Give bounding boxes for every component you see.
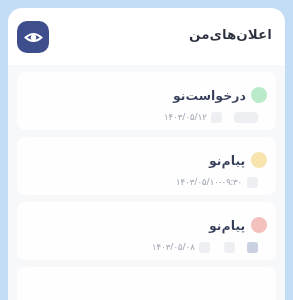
staticText: پیام‌نو [209, 153, 246, 168]
button[interactable]: پیام‌نو [17, 202, 276, 260]
button[interactable]: درخواست‌نو [17, 72, 276, 130]
staticText: اعلان‌های‌من [189, 26, 272, 42]
staticText: ۱۴۰۳/۰۵/۱۰-۰۹:۳۰ [176, 176, 243, 188]
staticText: پیام‌نو [209, 218, 246, 233]
button[interactable]: پیام‌نو [17, 137, 276, 195]
staticText: ۱۴۰۳/۰۵/۱۲ [164, 111, 207, 123]
button[interactable]: Preview [17, 21, 49, 53]
staticText: ۱۴۰۳/۰۵/۰۸ [152, 241, 195, 253]
staticText: درخواست‌نو [173, 88, 246, 103]
